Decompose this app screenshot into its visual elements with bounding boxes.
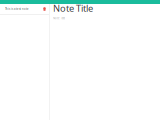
button[interactable]: This is a test note (0, 4, 49, 14)
button[interactable]: Delete note (43, 7, 46, 11)
staticText: This is a test note (5, 7, 29, 11)
staticText: Note Text (53, 16, 65, 20)
staticText: Note Title (53, 2, 93, 14)
